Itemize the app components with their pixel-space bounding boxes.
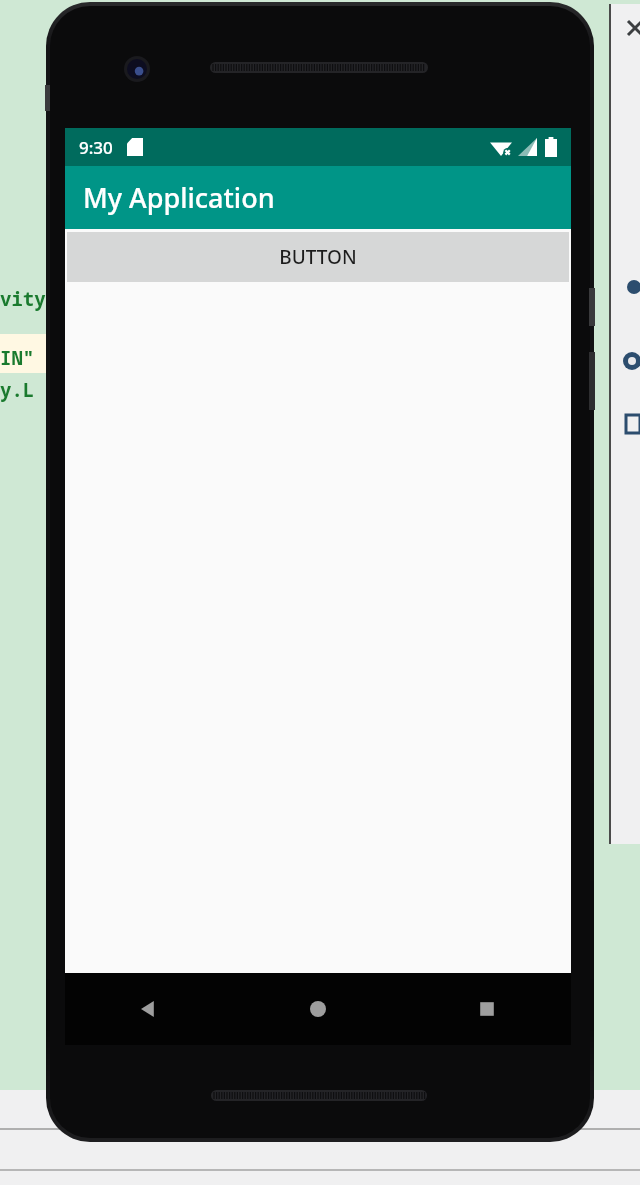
button[interactable]: Home [233,973,402,1045]
staticText: My Application [83,179,275,216]
staticText: 9:30 [79,136,113,159]
staticText: y.L [0,377,35,403]
staticText: vity [0,286,46,312]
button[interactable]: Recent apps [402,973,571,1045]
staticText: IN" [0,345,35,371]
button[interactable]: BUTTON [67,232,569,282]
button[interactable]: Back [65,973,233,1045]
staticText: BUTTON [279,244,357,270]
